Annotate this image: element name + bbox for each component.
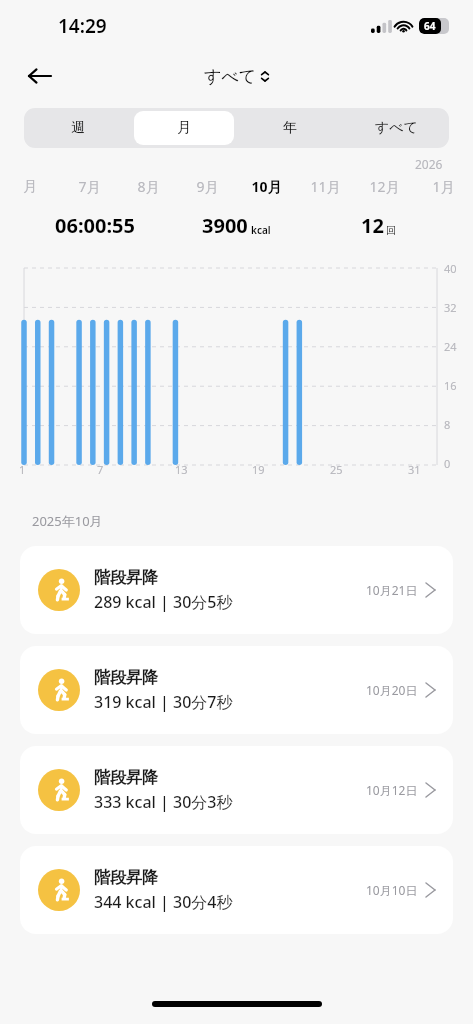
button[interactable]: 年 xyxy=(240,111,340,145)
staticText: すべて xyxy=(375,119,418,137)
button[interactable]: 12月 xyxy=(355,177,414,196)
button[interactable]: 1月 xyxy=(414,177,473,196)
staticText: 階段昇降 xyxy=(94,668,158,688)
button[interactable]: 階段昇降 xyxy=(20,546,453,634)
staticText: 19 xyxy=(252,462,265,477)
staticText: 10月 xyxy=(251,177,282,196)
button[interactable]: 7月 xyxy=(60,177,119,196)
button[interactable]: 月 xyxy=(0,178,60,196)
button[interactable]: 8月 xyxy=(119,177,178,196)
button[interactable]: すべて xyxy=(204,66,270,87)
staticText: 8月 xyxy=(137,177,160,196)
staticText: 月 xyxy=(23,178,37,196)
button[interactable]: 階段昇降 xyxy=(20,746,453,834)
staticText: 1 xyxy=(19,462,26,477)
staticText: 24 xyxy=(444,339,457,354)
staticText: 344 kcal | 30分4秒 xyxy=(94,891,233,913)
staticText: 12 xyxy=(361,212,384,239)
staticText: 319 kcal | 30分7秒 xyxy=(94,691,233,713)
staticText: 2026 xyxy=(415,156,443,172)
staticText: 13 xyxy=(175,462,188,477)
staticText: 11月 xyxy=(310,177,341,196)
staticText: 9月 xyxy=(196,177,219,196)
button[interactable]: 階段昇降 xyxy=(20,846,453,934)
staticText: 31 xyxy=(408,462,421,477)
button[interactable]: 11月 xyxy=(296,177,355,196)
staticText: 階段昇降 xyxy=(94,568,158,588)
staticText: 14:29 xyxy=(58,13,107,39)
button[interactable]: 9月 xyxy=(178,177,237,196)
staticText: 12月 xyxy=(369,177,400,196)
button[interactable]: 10月 xyxy=(237,177,296,196)
staticText: 25 xyxy=(330,462,343,477)
staticText: 月 xyxy=(177,119,191,137)
staticText: 06:00:55 xyxy=(55,212,135,239)
staticText: kcal xyxy=(251,223,271,237)
staticText: 7月 xyxy=(78,177,101,196)
staticText: 0 xyxy=(444,456,451,471)
staticText: 週 xyxy=(71,119,85,137)
staticText: 年 xyxy=(283,119,297,137)
button[interactable]: 月 xyxy=(134,111,234,145)
staticText: 10月12日 xyxy=(366,782,418,798)
staticText: 333 kcal | 30分3秒 xyxy=(94,791,233,813)
staticText: 10月20日 xyxy=(366,682,418,698)
staticText: すべて xyxy=(204,66,257,87)
staticText: 289 kcal | 30分5秒 xyxy=(94,591,233,613)
staticText: 1月 xyxy=(432,177,455,196)
staticText: 階段昇降 xyxy=(94,768,158,788)
button[interactable]: 週 xyxy=(27,111,128,145)
staticText: 7 xyxy=(97,462,104,477)
staticText: 32 xyxy=(444,300,457,315)
staticText: 10月10日 xyxy=(366,882,418,898)
staticText: 64 xyxy=(424,19,436,33)
button[interactable]: すべて xyxy=(346,111,446,145)
staticText: 3900 xyxy=(202,212,248,239)
staticText: 16 xyxy=(444,378,457,393)
staticText: 階段昇降 xyxy=(94,868,158,888)
staticText: 2025年10月 xyxy=(32,512,103,530)
button[interactable]: 階段昇降 xyxy=(20,646,453,734)
staticText: 回 xyxy=(386,224,396,237)
staticText: 10月21日 xyxy=(366,582,418,598)
button[interactable]: Back xyxy=(18,54,62,98)
staticText: 40 xyxy=(444,261,457,276)
staticText: 8 xyxy=(444,417,451,432)
